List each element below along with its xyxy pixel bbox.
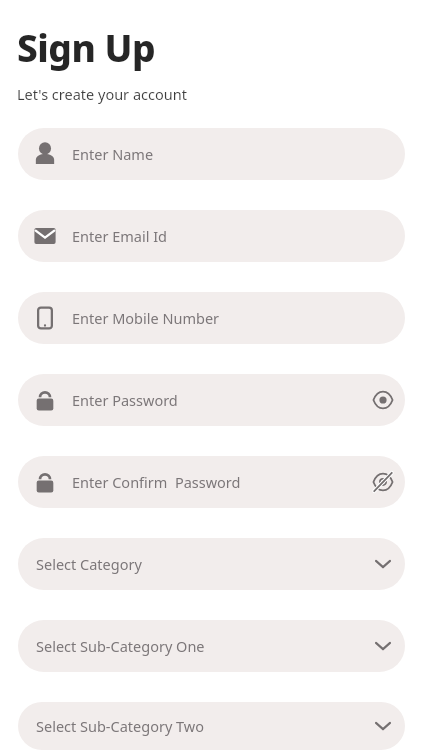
- staticText: Enter Password: [72, 390, 178, 410]
- button[interactable]: Show password: [361, 378, 405, 422]
- button[interactable]: Enter Name: [18, 128, 405, 180]
- button[interactable]: Select Sub-Category One: [18, 620, 405, 672]
- button[interactable]: Enter Mobile Number: [18, 292, 405, 344]
- button[interactable]: Enter Password: [18, 374, 405, 426]
- button[interactable]: Select Sub-Category Two: [18, 702, 405, 750]
- staticText: Let's create your account: [17, 84, 187, 104]
- staticText: Enter Email Id: [72, 226, 168, 246]
- button[interactable]: Select Category: [18, 538, 405, 590]
- button[interactable]: Open sub-category two list: [361, 704, 405, 748]
- staticText: Select Sub-Category Two: [36, 716, 205, 736]
- button[interactable]: Enter Confirm Password: [18, 456, 405, 508]
- button[interactable]: Open category list: [361, 542, 405, 586]
- staticText: Select Sub-Category One: [36, 636, 205, 656]
- staticText: Enter Confirm Password: [72, 472, 241, 492]
- staticText: Enter Name: [72, 144, 154, 164]
- button[interactable]: Open sub-category one list: [361, 624, 405, 668]
- staticText: Sign Up: [17, 22, 155, 72]
- button[interactable]: Hide confirm password: [361, 460, 405, 504]
- staticText: Enter Mobile Number: [72, 308, 220, 328]
- button[interactable]: Enter Email Id: [18, 210, 405, 262]
- staticText: Select Category: [36, 554, 142, 574]
